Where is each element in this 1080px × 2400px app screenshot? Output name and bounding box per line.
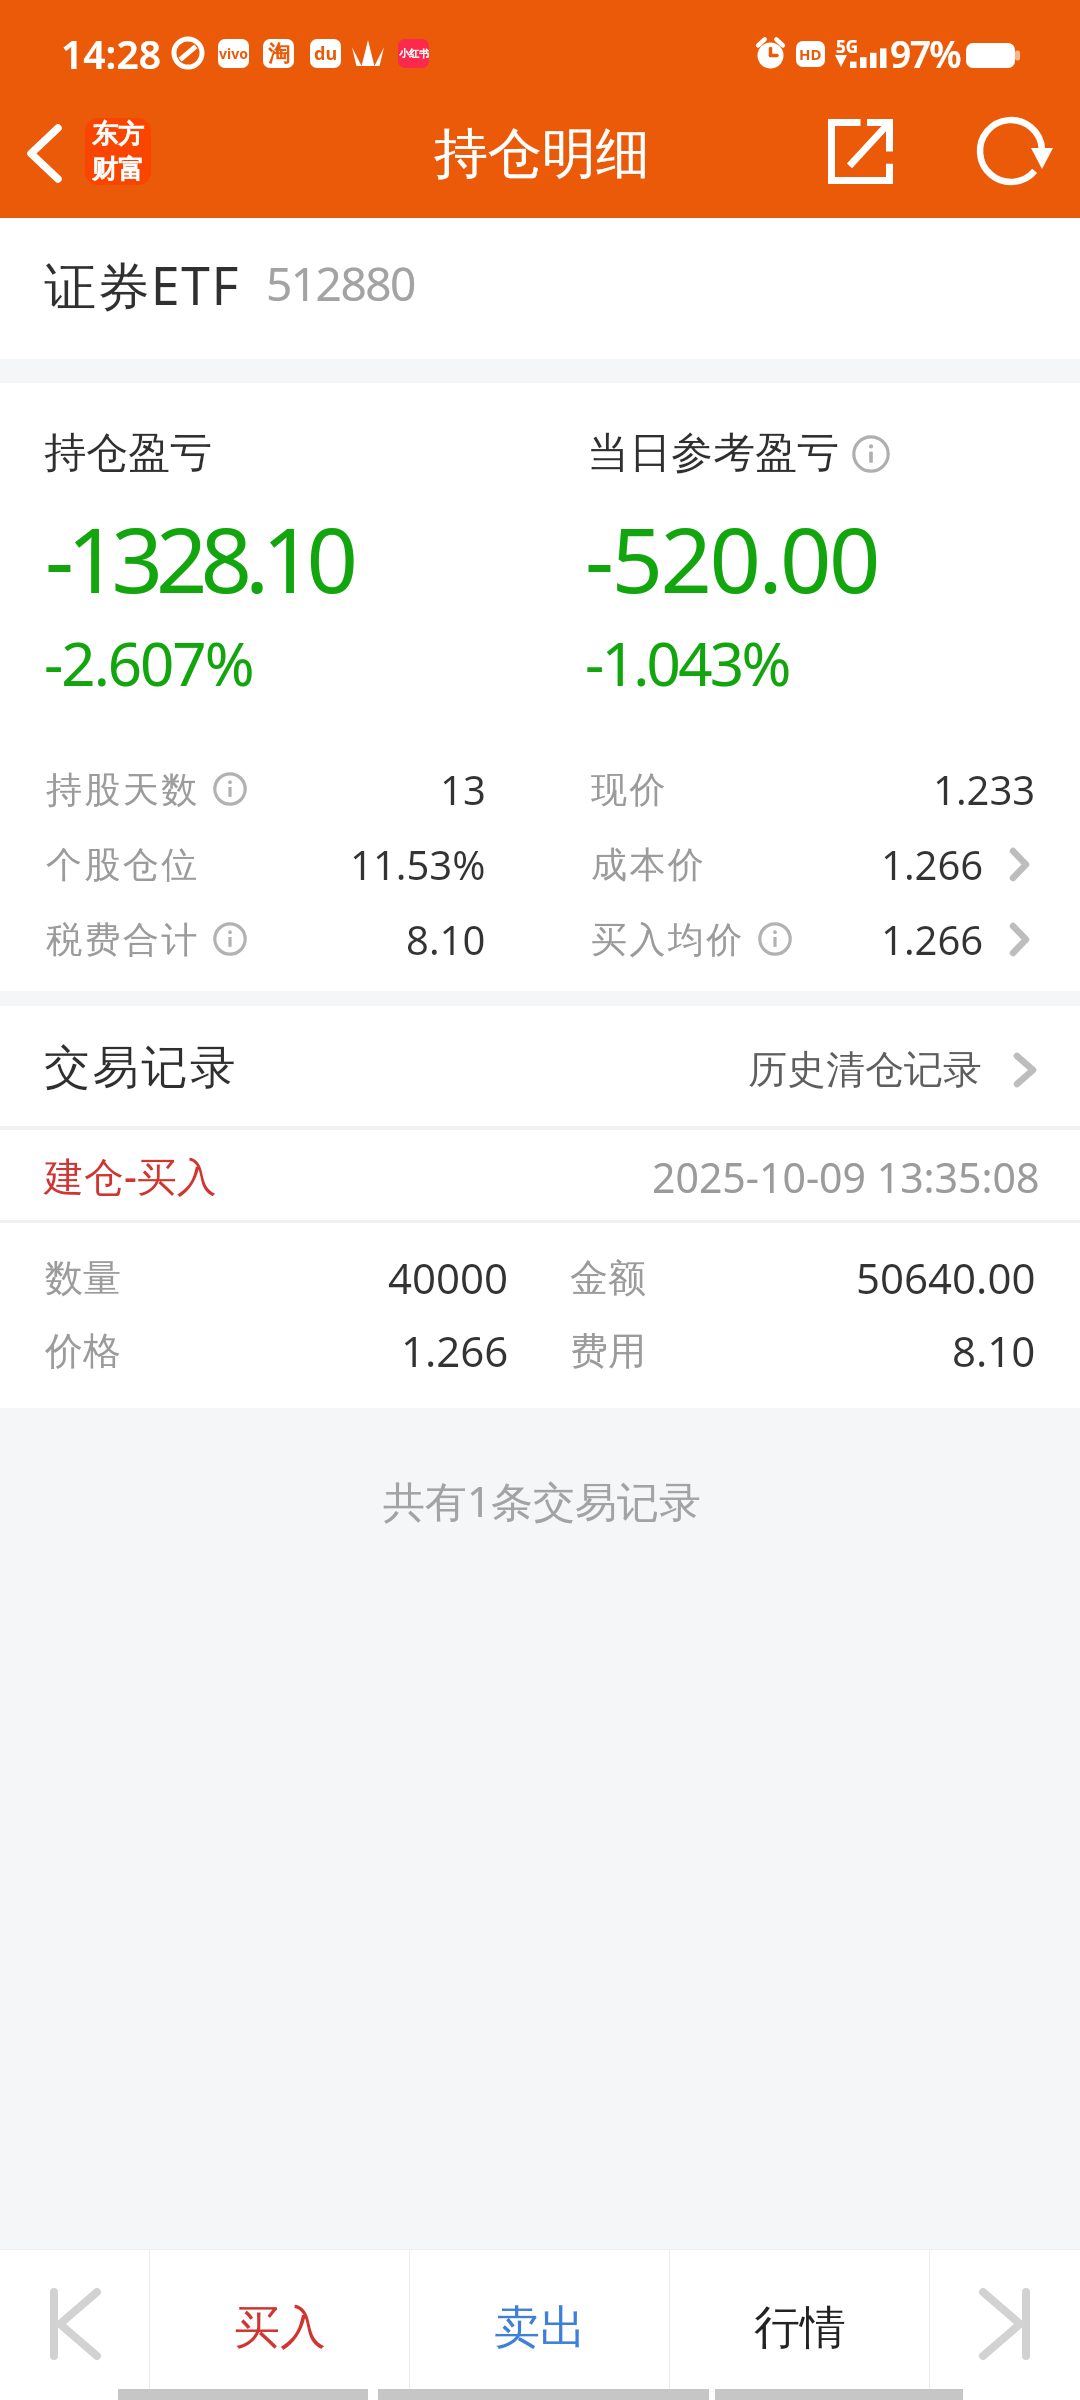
staticText: vivo bbox=[219, 44, 248, 63]
button[interactable]: 历史清仓记录 bbox=[748, 1045, 1036, 1094]
staticText: 97% bbox=[890, 28, 961, 78]
staticText: 当日参考盈亏 bbox=[587, 427, 839, 480]
button[interactable]: 卖出 bbox=[410, 2250, 669, 2389]
staticText: 费用 bbox=[570, 1327, 646, 1375]
staticText: -2.607% bbox=[44, 622, 253, 704]
staticText: 40000 bbox=[388, 1249, 509, 1306]
staticText: 成本价 bbox=[591, 842, 707, 887]
staticText: 买入均价 bbox=[591, 917, 745, 962]
staticText: 持仓明细 bbox=[434, 120, 650, 188]
staticText: 8.10 bbox=[406, 912, 486, 966]
button[interactable]: Share bbox=[810, 101, 910, 201]
button[interactable]: Back bbox=[0, 101, 80, 218]
staticText: 1.266 bbox=[401, 1322, 509, 1379]
staticText: 1.266 bbox=[881, 912, 984, 966]
button[interactable]: 行情 bbox=[670, 2250, 929, 2389]
button[interactable]: East Money bbox=[85, 118, 151, 185]
staticText: -520.00 bbox=[585, 497, 878, 620]
staticText: du bbox=[314, 41, 338, 66]
staticText: -1.043% bbox=[585, 622, 789, 704]
staticText: 持仓盈亏 bbox=[44, 427, 212, 480]
staticText: 5G bbox=[836, 35, 859, 58]
staticText: 共有1条交易记录 bbox=[383, 1472, 702, 1529]
staticText: 持股天数 bbox=[46, 767, 200, 812]
staticText: 2025-10-09 13:35:08 bbox=[652, 1149, 1040, 1205]
staticText: 历史清仓记录 bbox=[748, 1045, 982, 1094]
staticText: 淘 bbox=[268, 40, 290, 68]
staticText: 1.233 bbox=[933, 762, 1036, 816]
button[interactable]: 买入 bbox=[150, 2250, 409, 2389]
staticText: 财富 bbox=[92, 153, 144, 185]
button[interactable]: 建仓-买入 bbox=[0, 1130, 1080, 1220]
staticText: 512880 bbox=[266, 252, 415, 315]
staticText: 个股仓位 bbox=[46, 842, 200, 887]
button[interactable]: Next stock bbox=[930, 2250, 1080, 2389]
button[interactable]: 买入均价 bbox=[591, 912, 1036, 966]
staticText: 小红书 bbox=[399, 47, 429, 60]
staticText: 税费合计 bbox=[46, 917, 200, 962]
button[interactable]: Refresh bbox=[965, 101, 1065, 201]
button[interactable]: Previous stock bbox=[0, 2250, 149, 2389]
staticText: 1.266 bbox=[881, 837, 984, 891]
staticText: 11.53% bbox=[350, 837, 486, 891]
staticText: 14:28 bbox=[61, 27, 161, 80]
button[interactable]: 成本价 bbox=[591, 837, 1036, 891]
staticText: 建仓-买入 bbox=[44, 1148, 217, 1203]
staticText: 买入 bbox=[234, 2299, 326, 2357]
staticText: 8.10 bbox=[952, 1322, 1036, 1379]
staticText: 交易记录 bbox=[44, 1039, 239, 1097]
staticText: 13 bbox=[440, 762, 486, 816]
staticText: 金额 bbox=[570, 1254, 646, 1302]
staticText: 卖出 bbox=[494, 2299, 586, 2357]
staticText: 现价 bbox=[591, 767, 668, 812]
staticText: HD bbox=[799, 44, 822, 64]
staticText: 证券ETF bbox=[44, 249, 240, 320]
staticText: 50640.00 bbox=[856, 1249, 1036, 1306]
staticText: -1328.10 bbox=[45, 497, 351, 620]
staticText: 行情 bbox=[754, 2299, 846, 2357]
staticText: 东方 bbox=[92, 118, 144, 151]
staticText: 价格 bbox=[45, 1327, 121, 1375]
staticText: 数量 bbox=[45, 1254, 121, 1302]
